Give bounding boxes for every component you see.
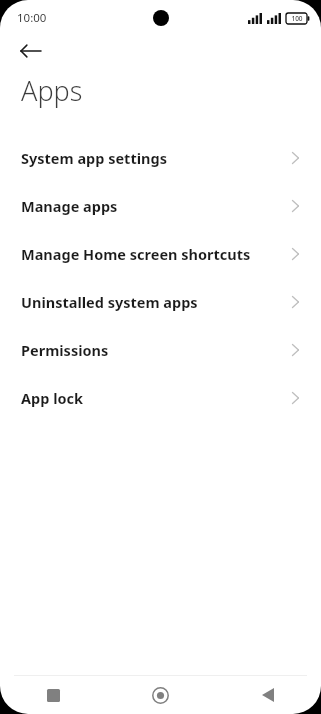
staticText: Apps	[21, 72, 83, 109]
staticText: Uninstalled system apps	[21, 292, 198, 312]
button[interactable]: Recents	[0, 676, 107, 714]
button[interactable]: Uninstalled system apps	[0, 278, 321, 326]
staticText: 10:00	[17, 10, 47, 26]
button[interactable]: Back	[14, 36, 48, 66]
button[interactable]: Home	[107, 676, 214, 714]
staticText: 100	[291, 14, 303, 23]
button[interactable]: Manage Home screen shortcuts	[0, 230, 321, 278]
staticText: Manage apps	[21, 196, 118, 216]
button[interactable]: System app settings	[0, 134, 321, 182]
button[interactable]: Manage apps	[0, 182, 321, 230]
staticText: Manage Home screen shortcuts	[21, 244, 251, 264]
button[interactable]: App lock	[0, 374, 321, 422]
staticText: App lock	[21, 388, 83, 408]
button[interactable]: Back	[214, 676, 321, 714]
button[interactable]: Permissions	[0, 326, 321, 374]
staticText: System app settings	[21, 148, 167, 168]
staticText: Permissions	[21, 340, 109, 360]
